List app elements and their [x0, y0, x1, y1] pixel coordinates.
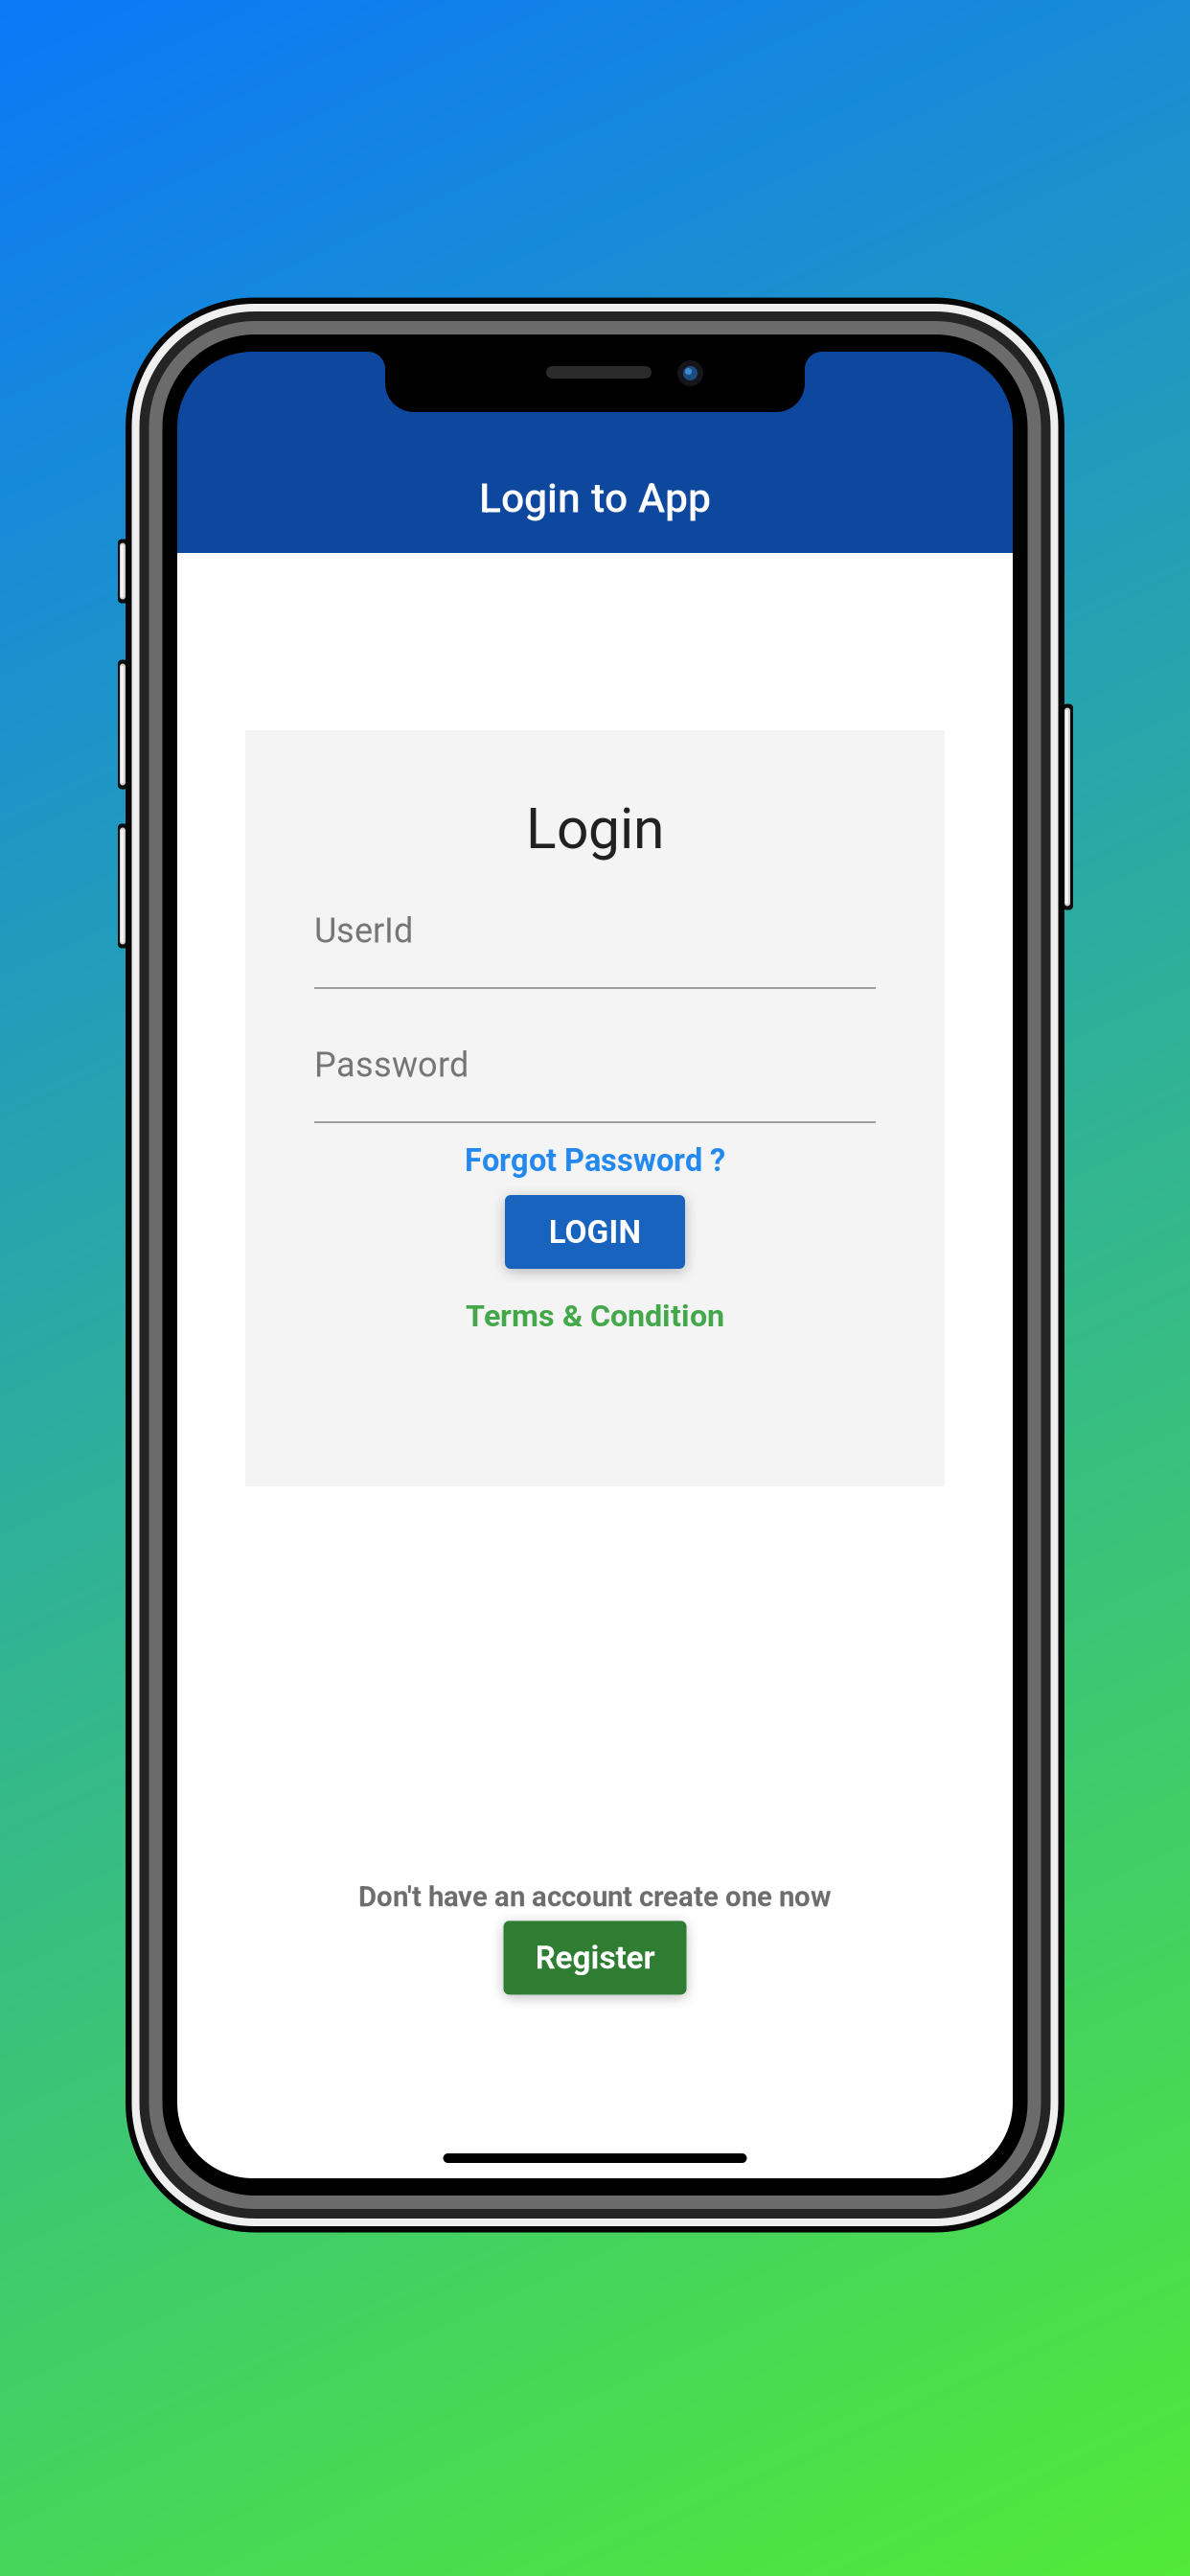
staticText: Password [314, 1045, 469, 1085]
button[interactable]: LOGIN [505, 1195, 685, 1269]
staticText: Terms & Condition [466, 1298, 724, 1334]
staticText: LOGIN [549, 1213, 641, 1251]
button[interactable]: Forgot Password ? [245, 1140, 945, 1181]
staticText: Login [526, 796, 664, 862]
staticText: Don't have an account create one now [358, 1880, 832, 1913]
button[interactable]: Register [503, 1921, 687, 1995]
button[interactable]: Terms & Condition [245, 1296, 945, 1336]
staticText: Register [535, 1939, 655, 1976]
staticText: Forgot Password ? [465, 1142, 725, 1179]
staticText: Login to App [479, 474, 711, 522]
staticText: UserId [314, 910, 413, 951]
